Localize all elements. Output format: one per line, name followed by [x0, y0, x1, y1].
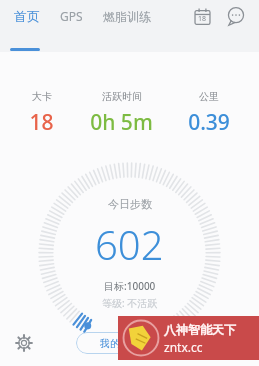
staticText: 602 [95, 217, 164, 271]
button[interactable]: Calendar [187, 1, 217, 31]
staticText: 18 [198, 14, 207, 24]
button[interactable]: 首页 [8, 0, 46, 32]
staticText: 公里 [199, 90, 219, 103]
staticText: 0h 5m [90, 108, 153, 137]
staticText: zntx.cc [164, 339, 203, 355]
staticText: 燃脂训练 [103, 9, 151, 24]
button[interactable]: 燃脂训练 [97, 1, 157, 32]
button[interactable]: 大卡 [23, 90, 60, 137]
staticText: 活跃时间 [102, 90, 142, 103]
button[interactable]: 今日步数 [95, 197, 164, 310]
button[interactable]: Messages [221, 1, 251, 31]
staticText: 我的运动记录 [100, 337, 160, 350]
button[interactable]: Settings [8, 327, 40, 359]
button[interactable]: 活跃时间 [84, 90, 159, 137]
staticText: 18 [29, 108, 54, 137]
button[interactable]: 我的运动记录 [76, 332, 184, 354]
staticText: 大卡 [32, 90, 52, 103]
staticText: 首页 [14, 8, 40, 24]
staticText: 等级: 不活跃 [102, 296, 158, 310]
button[interactable]: GPS [54, 0, 89, 32]
button[interactable]: 公里 [182, 90, 236, 137]
staticText: GPS [60, 8, 83, 24]
staticText: 八神智能天下 [164, 322, 236, 337]
staticText: 今日步数 [108, 197, 152, 211]
staticText: 目标:10000 [104, 279, 156, 293]
staticText: 0.39 [188, 108, 230, 137]
